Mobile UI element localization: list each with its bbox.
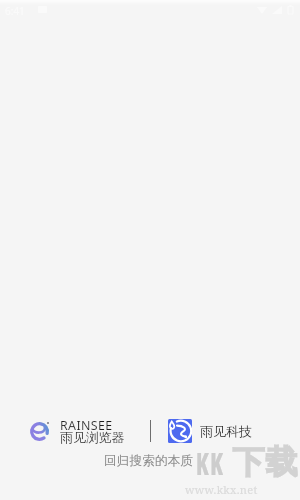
- staticText: KK: [196, 443, 225, 484]
- staticText: 雨见浏览器: [60, 430, 125, 446]
- staticText: 下载: [232, 442, 298, 482]
- button[interactable]: [30, 422, 49, 441]
- staticText: www.kkx.net: [185, 482, 258, 497]
- staticText: 雨见科技: [200, 423, 252, 439]
- staticText: RAINSEE: [60, 417, 113, 434]
- staticText: 回归搜索的本质: [104, 453, 193, 469]
- button[interactable]: [168, 419, 192, 443]
